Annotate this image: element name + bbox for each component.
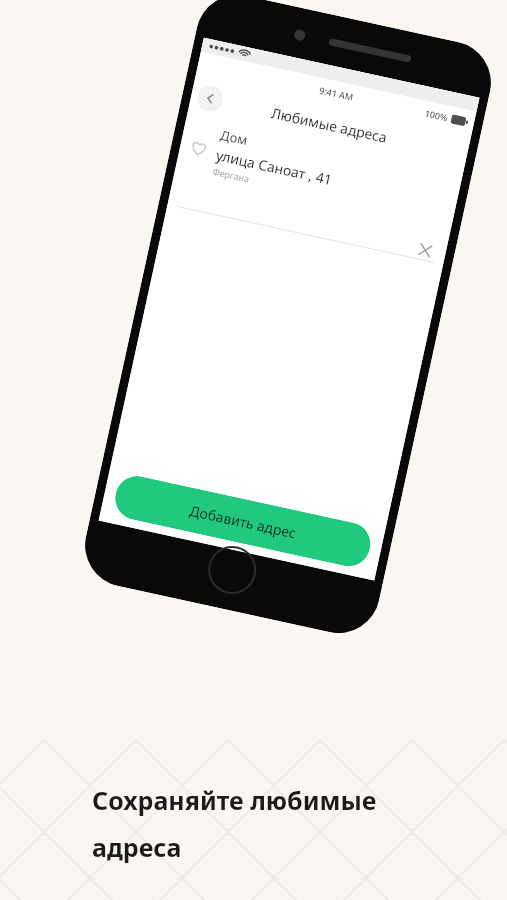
button[interactable]: Добавить адрес [111, 472, 374, 570]
staticText: Любимые адреса [270, 103, 389, 147]
button[interactable]: Удалить адрес [414, 239, 435, 260]
staticText: улица Саноат , 41 [214, 145, 335, 189]
staticText: 100% [424, 107, 450, 123]
staticText: адреса [92, 830, 182, 864]
staticText: 9:41 AM [318, 84, 355, 103]
staticText: Сохраняйте любимые [92, 783, 377, 817]
button[interactable]: Дом [167, 118, 462, 265]
staticText: Дом [219, 126, 250, 149]
staticText: Фергана [211, 165, 251, 185]
button[interactable]: Назад [195, 83, 226, 114]
staticText: Добавить адрес [188, 501, 298, 543]
